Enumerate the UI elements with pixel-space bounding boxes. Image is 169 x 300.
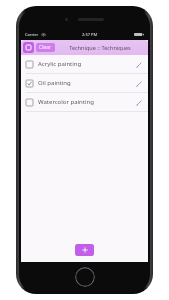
button[interactable]: Watercolor painting	[21, 93, 148, 111]
staticText: Watercolor painting	[38, 98, 134, 106]
button[interactable]: Clear	[36, 43, 55, 52]
staticText: Oil painting	[38, 79, 134, 87]
staticText: Acrylic painting	[38, 60, 134, 68]
button[interactable]: Home	[75, 267, 95, 287]
staticText: Clear	[39, 44, 52, 51]
staticText: Technique :: Techniques	[69, 44, 131, 51]
button[interactable]: Edit Oil painting	[134, 79, 143, 88]
staticText: Carrier	[25, 32, 39, 37]
button[interactable]: Menu	[23, 42, 34, 53]
button[interactable]: Add	[75, 244, 94, 256]
button[interactable]: Acrylic painting	[21, 55, 148, 73]
button[interactable]: Oil painting	[21, 74, 148, 92]
button[interactable]: Edit Acrylic painting	[134, 60, 143, 69]
button[interactable]: Edit Watercolor painting	[134, 98, 143, 107]
staticText: 2:57 PM	[82, 32, 98, 37]
